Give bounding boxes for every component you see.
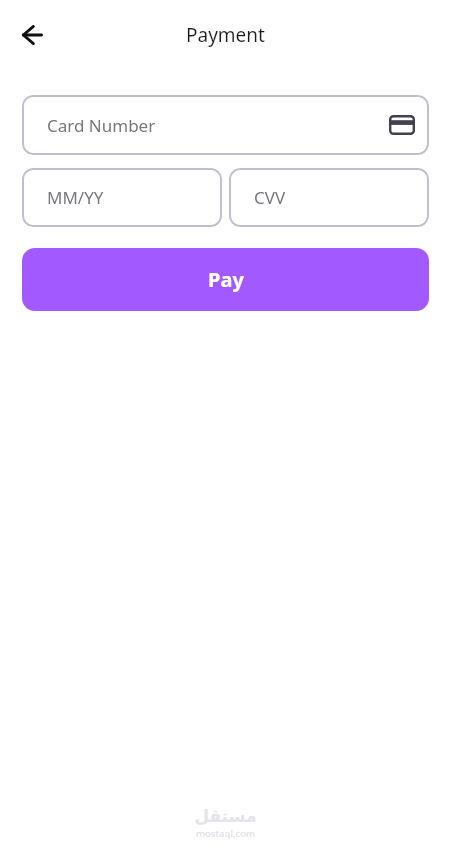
- staticText: مستقل: [194, 806, 257, 826]
- button[interactable]: Pay: [22, 248, 429, 311]
- button[interactable]: Back: [10, 13, 54, 57]
- other: Card type: [389, 115, 415, 135]
- staticText: CVV: [254, 186, 286, 209]
- button[interactable]: Card Number: [22, 95, 429, 155]
- staticText: Card Number: [47, 114, 156, 137]
- staticText: Payment: [186, 22, 265, 48]
- staticText: Pay: [208, 266, 244, 293]
- staticText: mostaql.com: [196, 827, 255, 840]
- button[interactable]: CVV: [229, 168, 429, 227]
- button[interactable]: MM/YY: [22, 168, 222, 227]
- staticText: MM/YY: [47, 186, 104, 209]
